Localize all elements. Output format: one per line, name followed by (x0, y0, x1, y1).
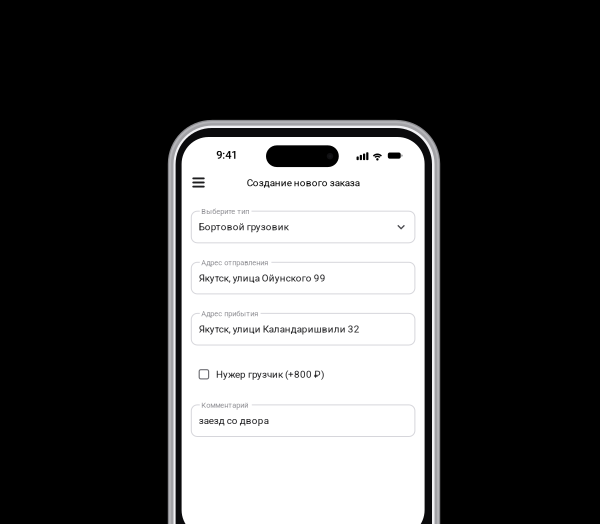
staticText: 9:41 (216, 148, 237, 161)
staticText: Выберите тип (201, 207, 249, 216)
staticText: Адрес отправления (201, 258, 268, 267)
staticText: Создание нового заказа (247, 177, 360, 189)
button[interactable]: Якутск, улица Ойунского 99 (191, 262, 415, 294)
button[interactable]: Бортовой грузовик (191, 211, 415, 243)
staticText: Комментарий (201, 401, 248, 410)
staticText: Бортовой грузовик (199, 221, 289, 233)
staticText: заезд со двора (199, 415, 269, 426)
staticText: Адрес прибытия (201, 309, 258, 318)
button[interactable]: заезд со двора (191, 405, 415, 436)
staticText: Якутск, улици Каландаришвили 32 (199, 323, 360, 335)
staticText: Нужер грузчик (+800 ₽) (216, 369, 324, 380)
button[interactable]: Нужер грузчик (+800 ₽) (191, 366, 415, 382)
button[interactable]: Якутск, улици Каландаришвили 32 (191, 313, 415, 345)
staticText: Якутск, улица Ойунского 99 (199, 272, 326, 284)
button[interactable]: Menu (187, 171, 209, 193)
